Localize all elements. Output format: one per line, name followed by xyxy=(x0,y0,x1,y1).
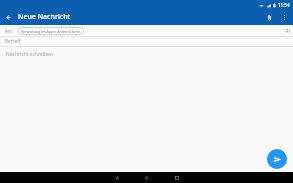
button[interactable]: An: xyxy=(0,25,293,36)
button[interactable]: Weitere Optionen xyxy=(277,10,291,24)
button[interactable]: Zurück xyxy=(102,172,132,183)
staticText: Nachricht schreiben xyxy=(6,51,53,58)
button[interactable]: Zurück xyxy=(0,9,16,25)
button[interactable]: Betreff xyxy=(0,37,293,46)
button[interactable]: Übersicht xyxy=(162,172,192,183)
button[interactable]: Verwaltung.im.Apple.Android.Serie xyxy=(18,27,84,35)
staticText: 11:54 xyxy=(278,2,290,8)
button[interactable]: Senden xyxy=(267,149,287,169)
staticText: Neue Nachricht xyxy=(18,12,71,22)
button[interactable]: Startbildschirm xyxy=(132,172,162,183)
staticText: Verwaltung.im.Apple.Android.Serie xyxy=(21,29,81,34)
staticText: Betreff xyxy=(5,38,21,45)
button[interactable]: Anhang hinzufügen xyxy=(261,9,277,25)
staticText: An: xyxy=(5,28,12,34)
button[interactable]: Kontakte xyxy=(282,25,293,36)
